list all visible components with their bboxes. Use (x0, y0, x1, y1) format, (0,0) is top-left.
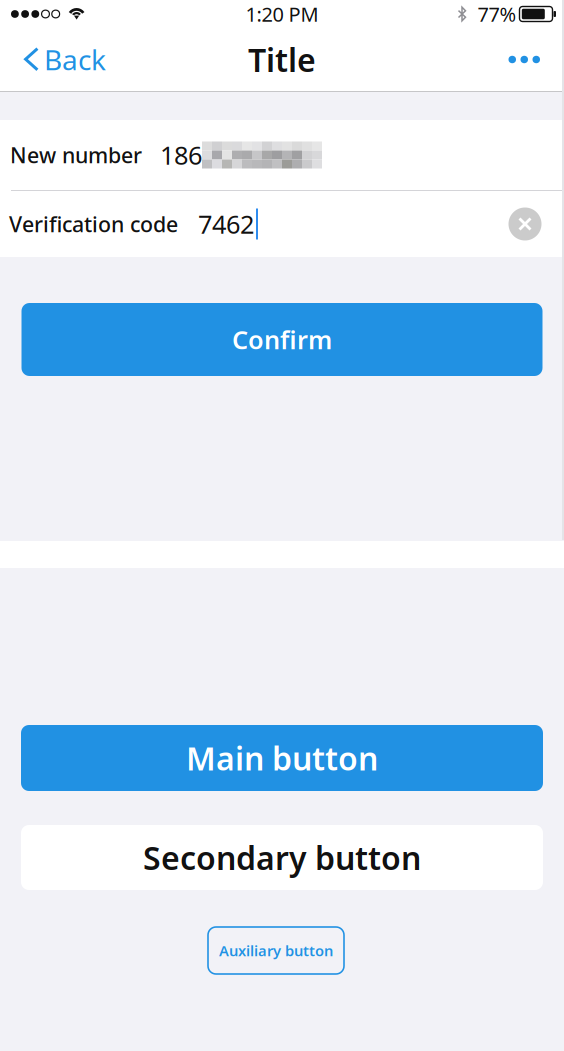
staticText: 1:20 PM (245, 1, 318, 27)
staticText: Auxiliary button (219, 941, 333, 960)
staticText: 186 (160, 138, 202, 172)
staticText: 7462 (198, 207, 254, 241)
staticText: Back (44, 41, 106, 78)
button[interactable]: Clear text (503, 202, 547, 246)
button[interactable]: More options (488, 28, 564, 90)
staticText: Confirm (232, 323, 332, 356)
button[interactable]: Confirm (21, 303, 542, 376)
staticText: 77% (477, 1, 516, 27)
staticText: Verification code (9, 210, 178, 238)
button[interactable]: Secondary button (21, 825, 543, 890)
staticText: New number (10, 141, 142, 169)
staticText: Main button (186, 737, 378, 779)
button[interactable]: Back (0, 28, 118, 90)
staticText: Secondary button (143, 836, 421, 879)
staticText: Title (248, 38, 316, 81)
button[interactable]: Auxiliary button (208, 927, 344, 974)
button[interactable]: Main button (21, 725, 543, 791)
